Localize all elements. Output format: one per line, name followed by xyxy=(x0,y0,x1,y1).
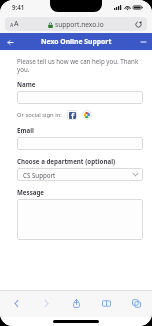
staticText: CS Support xyxy=(23,171,56,179)
staticText: Email xyxy=(17,126,34,134)
staticText: Nexo Online Support xyxy=(41,37,112,46)
button[interactable] xyxy=(17,91,143,104)
button[interactable]: Reload page xyxy=(133,19,143,29)
button[interactable]: Forward xyxy=(36,293,56,313)
staticText: 9:41 xyxy=(12,3,25,11)
staticText: A xyxy=(14,19,19,29)
button[interactable]: Share xyxy=(66,293,86,313)
staticText: A xyxy=(10,22,14,29)
button[interactable] xyxy=(17,199,143,240)
staticText: Choose a department (optional) xyxy=(17,157,116,165)
staticText: Message xyxy=(17,188,45,196)
staticText: Please tell us how we can help you. Than… xyxy=(17,57,143,73)
button[interactable]: CS Support xyxy=(17,168,143,181)
button[interactable]: Page text size xyxy=(5,17,147,31)
staticText: support.nexo.io xyxy=(55,20,104,29)
staticText: Name xyxy=(17,80,36,88)
button[interactable] xyxy=(17,137,143,150)
button[interactable]: Sign in with Google xyxy=(82,110,92,120)
staticText: Or social sign in: xyxy=(17,111,62,119)
button[interactable]: Tabs xyxy=(126,293,146,313)
button[interactable]: Page text size xyxy=(10,19,19,29)
button[interactable]: Back xyxy=(6,293,26,313)
button[interactable]: Sign in with Facebook xyxy=(67,110,77,120)
button[interactable]: Back xyxy=(3,35,17,49)
button[interactable]: Bookmarks xyxy=(96,293,116,313)
button[interactable]: Minimize chat xyxy=(137,36,149,48)
